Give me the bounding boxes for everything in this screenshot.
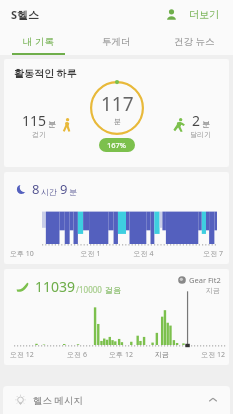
staticText: 지금: [206, 286, 220, 295]
staticText: 분: [48, 119, 56, 129]
other: Expand: [208, 395, 218, 405]
button[interactable]: 활동적인 하루: [4, 59, 229, 167]
button[interactable]: Profile: [159, 2, 183, 26]
staticText: 내 기록: [23, 35, 54, 48]
staticText: 걸음: [105, 285, 121, 295]
staticText: /10000: [76, 284, 102, 295]
staticText: 오후 10: [10, 249, 64, 259]
staticText: 분: [114, 117, 121, 126]
staticText: 분: [202, 119, 210, 129]
staticText: 오전 7: [170, 249, 223, 259]
staticText: 지금: [143, 350, 181, 359]
staticText: 오전 12: [10, 350, 55, 360]
button[interactable]: 내 기록: [0, 28, 77, 55]
staticText: 시간: [41, 187, 57, 197]
staticText: 오전 12: [181, 350, 225, 360]
staticText: 헬스 메시지: [33, 394, 83, 407]
staticText: S헬스: [11, 7, 40, 22]
staticText: 걷기: [32, 130, 46, 139]
staticText: 활동적인 하루: [14, 66, 77, 80]
staticText: 건강 뉴스: [174, 35, 215, 48]
button[interactable]: 건강 뉴스: [155, 28, 233, 55]
staticText: 투게더: [102, 36, 131, 48]
button[interactable]: 투게더: [77, 28, 155, 55]
button[interactable]: 11039: [4, 269, 229, 365]
button[interactable]: 더보기: [183, 4, 225, 25]
staticText: 9: [60, 180, 68, 198]
staticText: 167%: [107, 140, 127, 150]
staticText: 더보기: [189, 8, 219, 21]
staticText: 오후 12: [99, 350, 143, 360]
staticText: Gear Fit2: [189, 275, 221, 285]
staticText: 117: [101, 91, 134, 117]
staticText: 11039: [35, 277, 76, 296]
staticText: 오전 6: [55, 350, 99, 360]
button[interactable]: 헬스 메시지: [3, 386, 230, 414]
staticText: 분: [69, 187, 77, 197]
staticText: 달리기: [190, 130, 211, 139]
staticText: 오전 4: [117, 249, 170, 259]
staticText: 115: [22, 111, 47, 130]
button[interactable]: 8: [4, 172, 229, 264]
staticText: 2: [192, 111, 201, 130]
staticText: 오전 1: [64, 249, 117, 259]
staticText: 8: [32, 180, 40, 198]
